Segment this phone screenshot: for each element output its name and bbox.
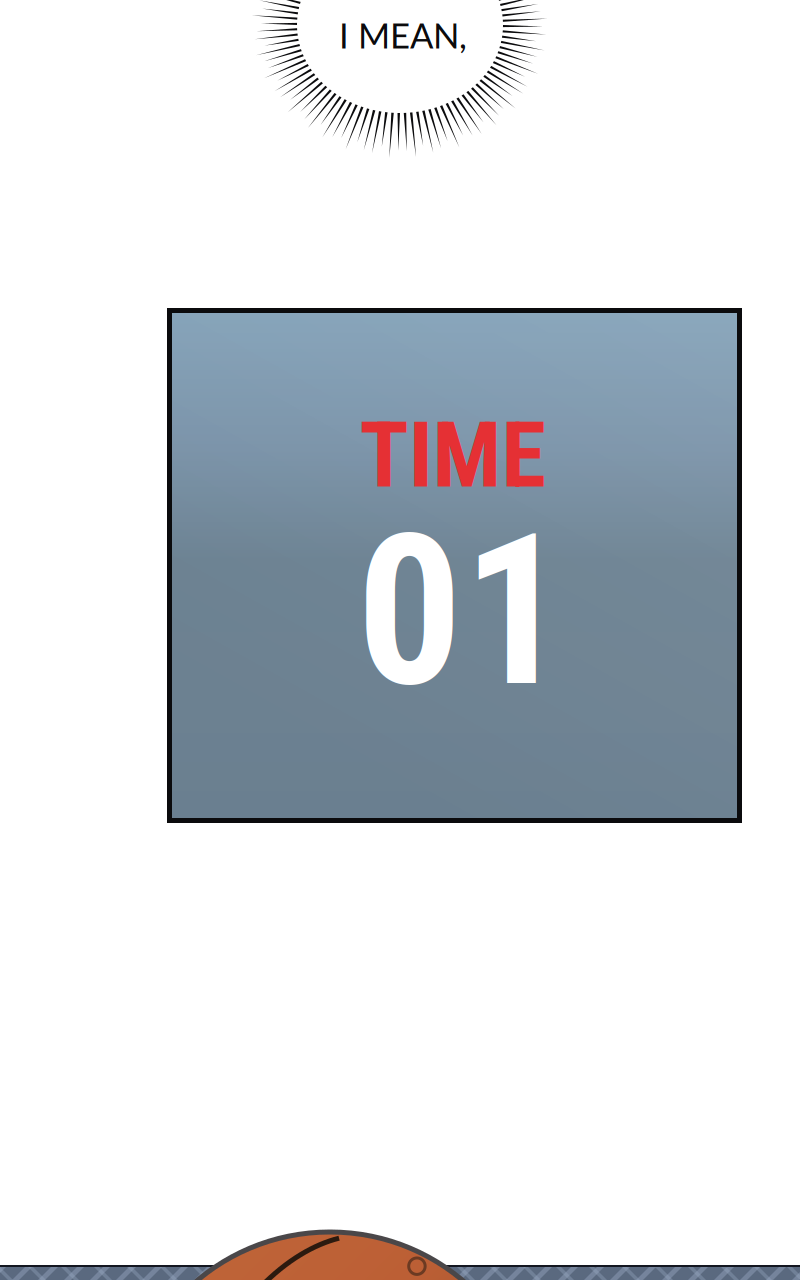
staticText: I MEAN, — [339, 14, 467, 56]
staticText: 01 — [356, 489, 568, 734]
staticText: TIME — [359, 402, 545, 509]
